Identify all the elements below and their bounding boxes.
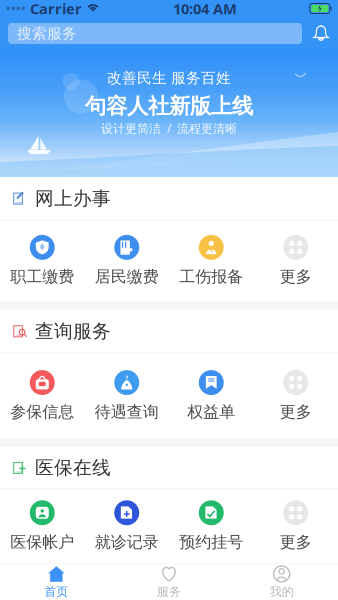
- button[interactable]: 职工缴费: [0, 221, 84, 301]
- staticText: 更多: [280, 532, 312, 552]
- staticText: 职工缴费: [10, 267, 74, 287]
- button[interactable]: 权益单: [169, 353, 253, 438]
- staticText: 医保帐户: [10, 532, 74, 552]
- button[interactable]: 医保帐户: [0, 489, 84, 563]
- staticText: 服务: [157, 584, 181, 599]
- staticText: 就诊记录: [95, 532, 159, 552]
- staticText: Carrier: [26, 0, 86, 18]
- button[interactable]: 就诊记录: [84, 489, 169, 563]
- staticText: 工伤报备: [179, 267, 243, 287]
- staticText: 首页: [44, 584, 68, 599]
- staticText: 网上办事: [35, 187, 111, 210]
- button[interactable]: 更多: [253, 489, 338, 563]
- button[interactable]: 更多: [253, 221, 338, 301]
- staticText: 参保信息: [10, 402, 74, 422]
- button[interactable]: 搜索服务: [8, 23, 302, 44]
- button[interactable]: 首页: [0, 560, 113, 600]
- button[interactable]: 工伤报备: [169, 221, 253, 301]
- staticText: 医保在线: [35, 456, 111, 479]
- button[interactable]: 通知: [311, 23, 331, 43]
- button[interactable]: 居民缴费: [84, 221, 169, 301]
- staticText: 待遇查询: [95, 402, 159, 422]
- staticText: 句容人社新版上线: [85, 93, 253, 119]
- staticText: 我的: [270, 584, 294, 599]
- staticText: ••••: [6, 0, 26, 16]
- staticText: 更多: [280, 267, 312, 287]
- staticText: 改善民生 服务百姓: [107, 69, 231, 87]
- button[interactable]: 我的: [225, 560, 338, 600]
- staticText: 更多: [280, 402, 312, 422]
- staticText: 搜索服务: [17, 24, 77, 42]
- button[interactable]: 预约挂号: [169, 489, 253, 563]
- staticText: 查询服务: [35, 320, 111, 343]
- button[interactable]: 待遇查询: [84, 353, 169, 438]
- staticText: 10:04 AM: [173, 0, 237, 18]
- staticText: 权益单: [187, 402, 235, 422]
- button[interactable]: 参保信息: [0, 353, 84, 438]
- staticText: 设计更简洁 / 流程更清晰: [101, 120, 237, 136]
- button[interactable]: 更多: [253, 353, 338, 438]
- staticText: 居民缴费: [95, 267, 159, 287]
- button[interactable]: 服务: [113, 560, 225, 600]
- staticText: 预约挂号: [179, 532, 243, 552]
